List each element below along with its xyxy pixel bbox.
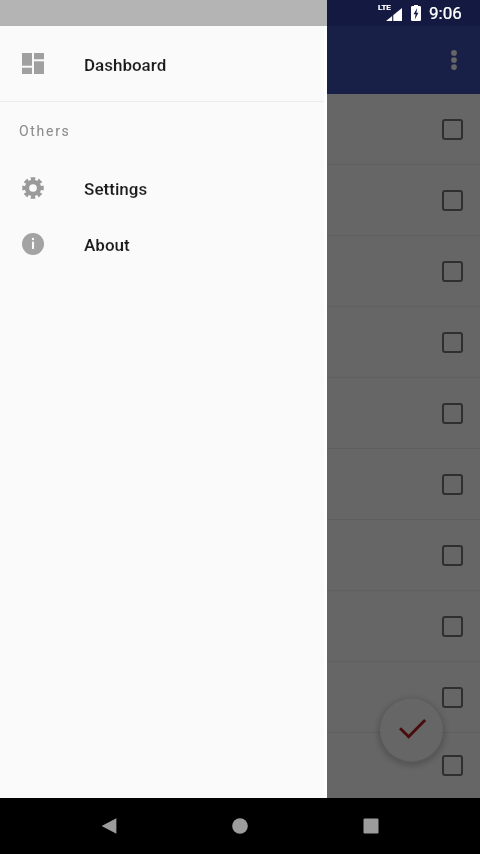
button[interactable] [0,662,480,733]
staticText: Dashboard [84,55,167,75]
button[interactable] [0,591,480,662]
button[interactable] [0,520,480,591]
staticText: Others [19,123,71,139]
button[interactable] [0,236,480,307]
button[interactable]: More options [432,38,476,82]
button[interactable] [0,94,480,165]
button[interactable] [0,378,480,449]
button[interactable]: About [0,216,327,272]
button[interactable] [0,165,480,236]
button[interactable] [0,733,480,798]
staticText: 9:06 [429,3,462,23]
staticText: Settings [84,179,148,199]
button[interactable] [0,307,480,378]
button[interactable]: Settings [0,160,327,216]
button[interactable] [0,449,480,520]
button[interactable]: Home [218,804,262,848]
button[interactable]: Recents [349,804,393,848]
button[interactable]: Back [87,804,131,848]
staticText: About [84,235,130,255]
button[interactable]: Done [380,698,443,761]
button[interactable]: Dashboard [0,26,327,101]
staticText: LTE [378,3,391,12]
